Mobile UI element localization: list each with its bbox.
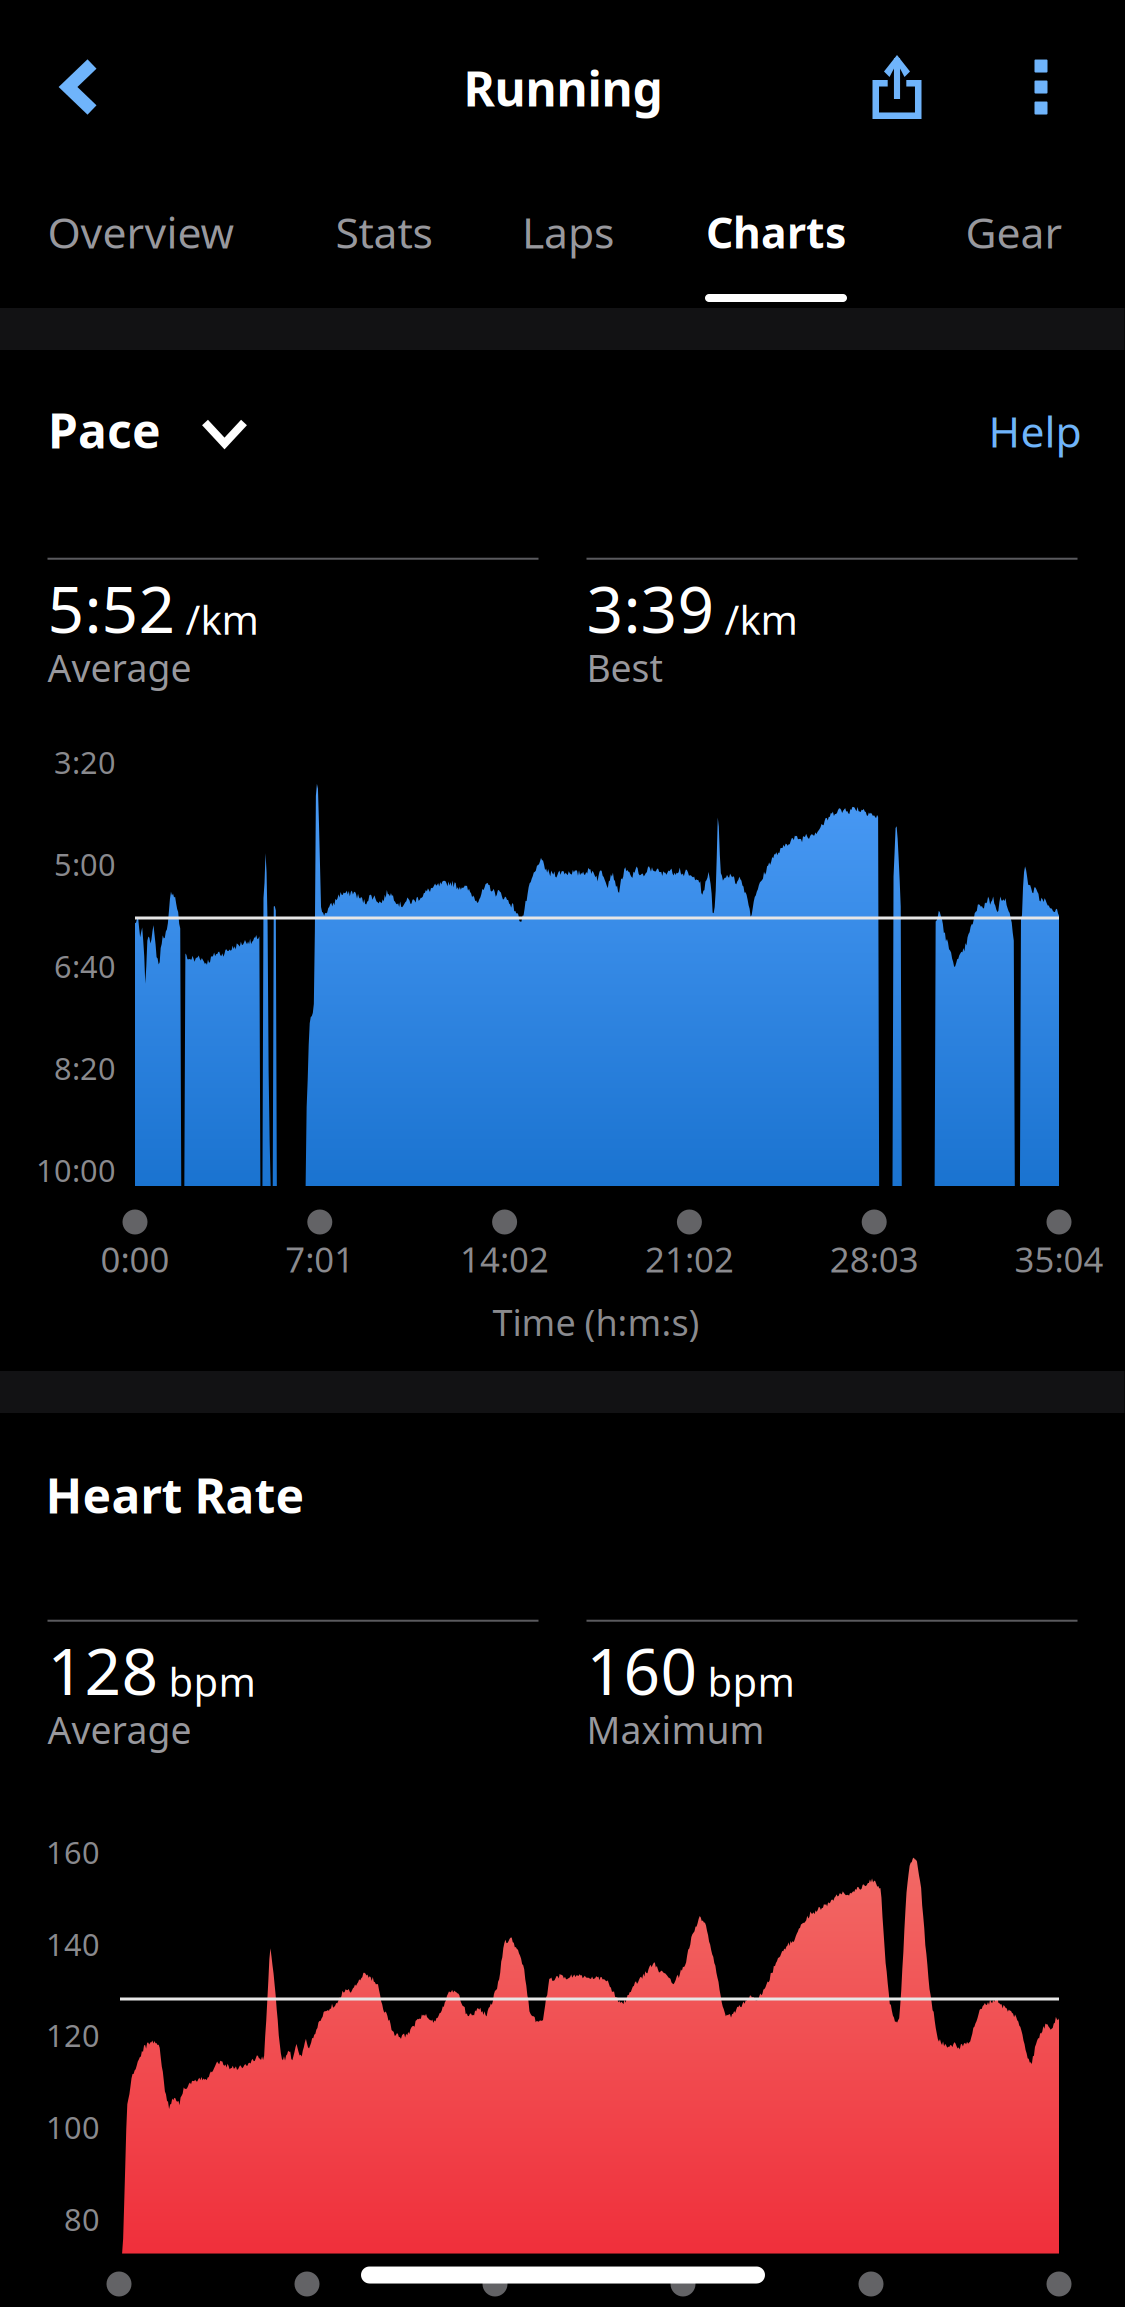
- staticText: Laps: [522, 204, 614, 260]
- staticText: /km: [185, 593, 258, 646]
- button[interactable]: Back: [22, 22, 138, 152]
- staticText: Time (h:m:s): [492, 1298, 699, 1346]
- staticText: 5:00: [54, 844, 116, 884]
- staticText: Stats: [335, 204, 432, 260]
- staticText: Charts: [706, 204, 846, 260]
- staticText: 140: [46, 1924, 100, 1964]
- staticText: 5:52: [47, 566, 175, 651]
- staticText: 80: [64, 2199, 100, 2239]
- staticText: bpm: [168, 1655, 255, 1708]
- staticText: bpm: [707, 1655, 794, 1708]
- staticText: 14:02: [460, 1236, 549, 1282]
- button[interactable]: Laps: [500, 164, 636, 300]
- staticText: 28:03: [830, 1236, 919, 1282]
- button[interactable]: Overview: [25, 164, 256, 300]
- staticText: Heart Rate: [45, 1463, 304, 1527]
- button[interactable]: Help: [964, 381, 1105, 481]
- button[interactable]: Pace: [30, 376, 262, 484]
- staticText: 100: [46, 2107, 100, 2147]
- staticText: 3:39: [586, 566, 714, 651]
- button[interactable]: More options: [986, 19, 1095, 154]
- staticText: 35:04: [1014, 1236, 1103, 1282]
- staticText: 10:00: [36, 1150, 116, 1190]
- staticText: 160: [46, 1832, 100, 1872]
- staticText: 6:40: [54, 946, 116, 986]
- staticText: Maximum: [586, 1705, 764, 1754]
- staticText: 160: [586, 1628, 697, 1713]
- staticText: 0:00: [100, 1236, 169, 1282]
- staticText: 3:20: [54, 742, 116, 782]
- staticText: 8:20: [54, 1048, 116, 1088]
- staticText: 7:01: [285, 1236, 354, 1282]
- staticText: 21:02: [645, 1236, 734, 1282]
- staticText: Gear: [965, 204, 1062, 260]
- button[interactable]: Charts: [684, 164, 868, 300]
- staticText: Running: [463, 56, 662, 120]
- staticText: Help: [988, 403, 1081, 459]
- staticText: Average: [47, 1705, 191, 1754]
- staticText: 120: [46, 2015, 100, 2055]
- staticText: Overview: [47, 204, 234, 260]
- button[interactable]: Share: [837, 25, 957, 155]
- button[interactable]: Stats: [313, 164, 454, 300]
- staticText: Average: [47, 643, 191, 692]
- staticText: Pace: [48, 398, 161, 462]
- staticText: Best: [586, 643, 662, 692]
- staticText: 128: [47, 1628, 158, 1713]
- button[interactable]: Gear: [943, 164, 1084, 300]
- staticText: /km: [724, 593, 797, 646]
